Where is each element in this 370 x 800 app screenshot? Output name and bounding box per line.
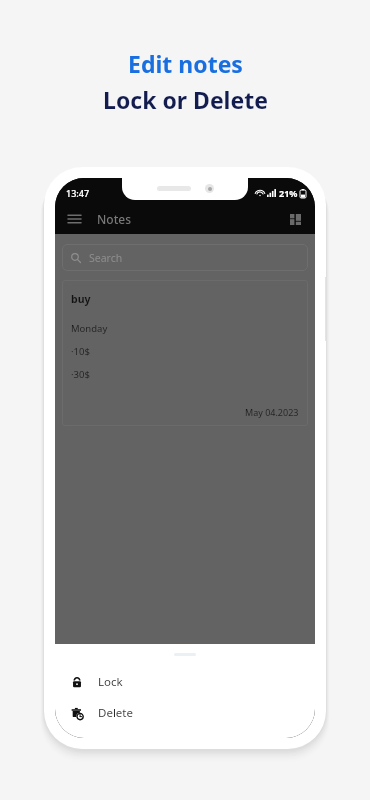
button[interactable]: Menu (61, 206, 87, 232)
button[interactable]: Search (62, 244, 308, 271)
staticText: Edit notes (128, 48, 243, 79)
staticText: buy (71, 292, 91, 306)
staticText: Delete (98, 705, 133, 721)
staticText: Search (89, 251, 123, 265)
staticText: Monday (71, 322, 108, 335)
staticText: ·30$ (71, 368, 90, 381)
staticText: May 04.2023 (245, 406, 299, 418)
staticText: 21% (279, 187, 298, 199)
button[interactable]: Lock (55, 666, 315, 697)
staticText: Notes (97, 211, 131, 227)
staticText: Lock (98, 674, 123, 690)
staticText: Lock or Delete (103, 84, 268, 115)
button[interactable]: Grid view (282, 206, 308, 232)
button[interactable]: buy (62, 280, 308, 426)
staticText: 13:47 (66, 187, 90, 199)
button[interactable]: Delete (55, 697, 315, 728)
staticText: ·10$ (71, 345, 90, 358)
